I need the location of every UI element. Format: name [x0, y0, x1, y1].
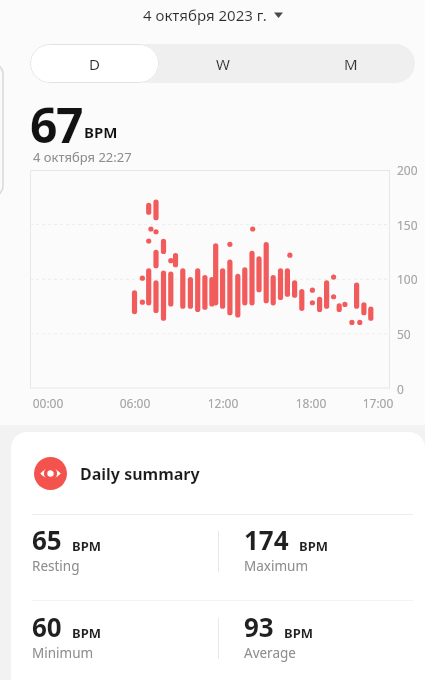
staticText: D: [89, 54, 100, 74]
staticText: 12:00: [193, 395, 253, 411]
staticText: BPM: [284, 624, 313, 642]
button[interactable]: D: [30, 44, 159, 83]
staticText: 67: [30, 92, 82, 157]
staticText: 0: [397, 381, 404, 397]
button[interactable]: 65: [32, 522, 101, 557]
button[interactable]: 174: [244, 522, 328, 557]
staticText: Resting: [32, 557, 80, 575]
button[interactable]: 4 октября 2023 г.: [143, 5, 283, 25]
staticText: 18:00: [281, 395, 341, 411]
staticText: BPM: [84, 122, 118, 142]
staticText: 4 октября 2023 г.: [143, 5, 267, 25]
button[interactable]: W: [159, 44, 287, 83]
staticText: BPM: [72, 624, 101, 642]
staticText: 00:00: [18, 395, 78, 411]
staticText: 06:00: [105, 395, 165, 411]
button[interactable]: Daily summary: [34, 457, 200, 490]
staticText: 174: [244, 522, 289, 557]
staticText: 4 октября 22:27: [33, 148, 132, 166]
staticText: 200: [397, 162, 418, 178]
staticText: 60: [32, 609, 62, 644]
staticText: Daily summary: [80, 463, 200, 485]
staticText: 50: [397, 326, 411, 342]
button[interactable]: 93: [244, 609, 313, 644]
staticText: M: [344, 54, 358, 74]
staticText: 93: [244, 609, 274, 644]
button[interactable]: 60: [32, 609, 101, 644]
staticText: 100: [397, 271, 418, 287]
staticText: 65: [32, 522, 62, 557]
staticText: Average: [244, 644, 296, 662]
staticText: 17:00: [348, 395, 408, 411]
staticText: Maximum: [244, 557, 309, 575]
staticText: Minimum: [32, 644, 94, 662]
button[interactable]: M: [287, 44, 415, 83]
staticText: BPM: [72, 537, 101, 555]
staticText: 150: [397, 217, 418, 233]
staticText: BPM: [299, 537, 328, 555]
staticText: W: [216, 54, 230, 74]
